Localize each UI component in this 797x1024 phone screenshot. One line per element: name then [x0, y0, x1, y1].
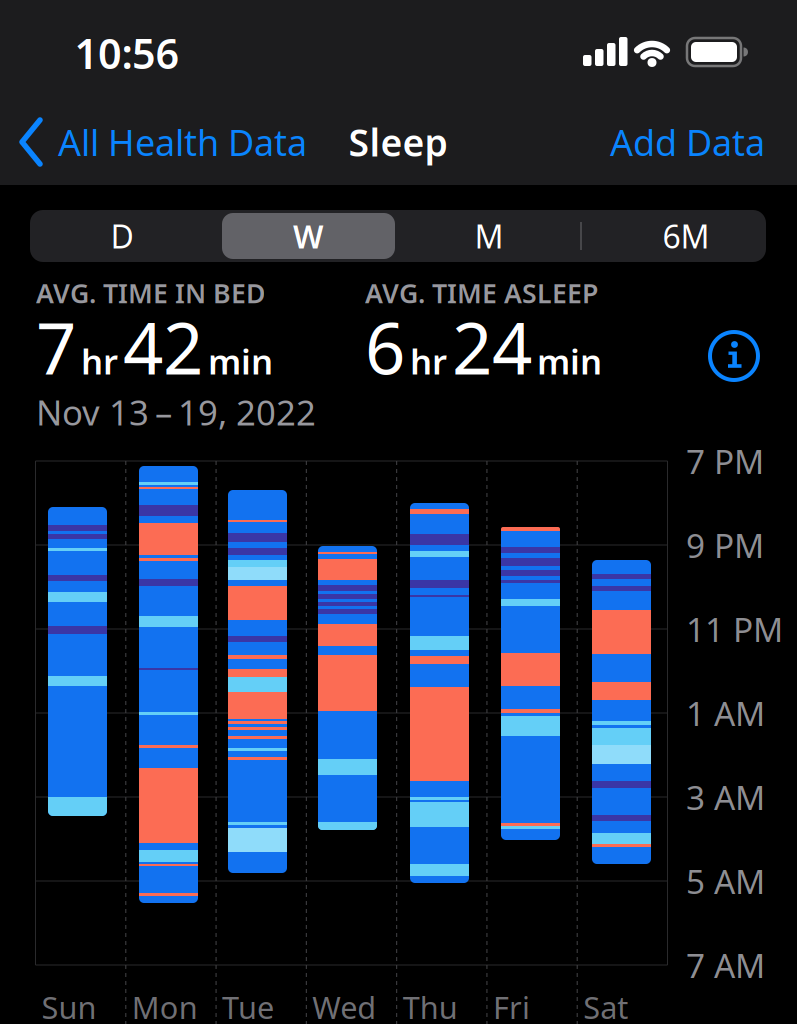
staticText: W	[293, 215, 323, 257]
staticText: AVG. TIME IN BED	[36, 275, 266, 311]
staticText: Sat	[583, 987, 628, 1024]
staticText: 7	[36, 300, 76, 394]
staticText: Wed	[312, 987, 376, 1024]
staticText: min	[537, 338, 602, 384]
staticText: Nov 13 – 19, 2022	[36, 389, 316, 435]
staticText: 6	[365, 300, 405, 394]
staticText: 1 AM	[686, 691, 765, 735]
staticText: Sleep	[348, 117, 447, 167]
staticText: 7 AM	[686, 943, 765, 987]
staticText: D	[110, 215, 133, 257]
staticText: 42	[123, 300, 203, 394]
staticText: Thu	[403, 987, 458, 1024]
staticText: min	[208, 338, 273, 384]
staticText: 9 PM	[686, 523, 764, 567]
staticText: 5 AM	[686, 859, 765, 903]
staticText: 6M	[662, 215, 709, 257]
staticText: 7 PM	[686, 439, 764, 483]
staticText: 10:56	[74, 26, 179, 80]
staticText: Tue	[222, 987, 274, 1024]
staticText: 11 PM	[686, 607, 783, 651]
staticText: Add Data	[610, 118, 765, 166]
staticText: 3 AM	[686, 775, 765, 819]
staticText: Mon	[132, 987, 198, 1024]
staticText: Fri	[493, 987, 530, 1024]
staticText: 24	[452, 300, 532, 394]
staticText: M	[474, 215, 503, 257]
staticText: Sun	[41, 987, 96, 1024]
staticText: AVG. TIME ASLEEP	[365, 275, 598, 311]
staticText: All Health Data	[58, 118, 307, 166]
staticText: hr	[81, 338, 118, 384]
staticText: hr	[410, 338, 447, 384]
